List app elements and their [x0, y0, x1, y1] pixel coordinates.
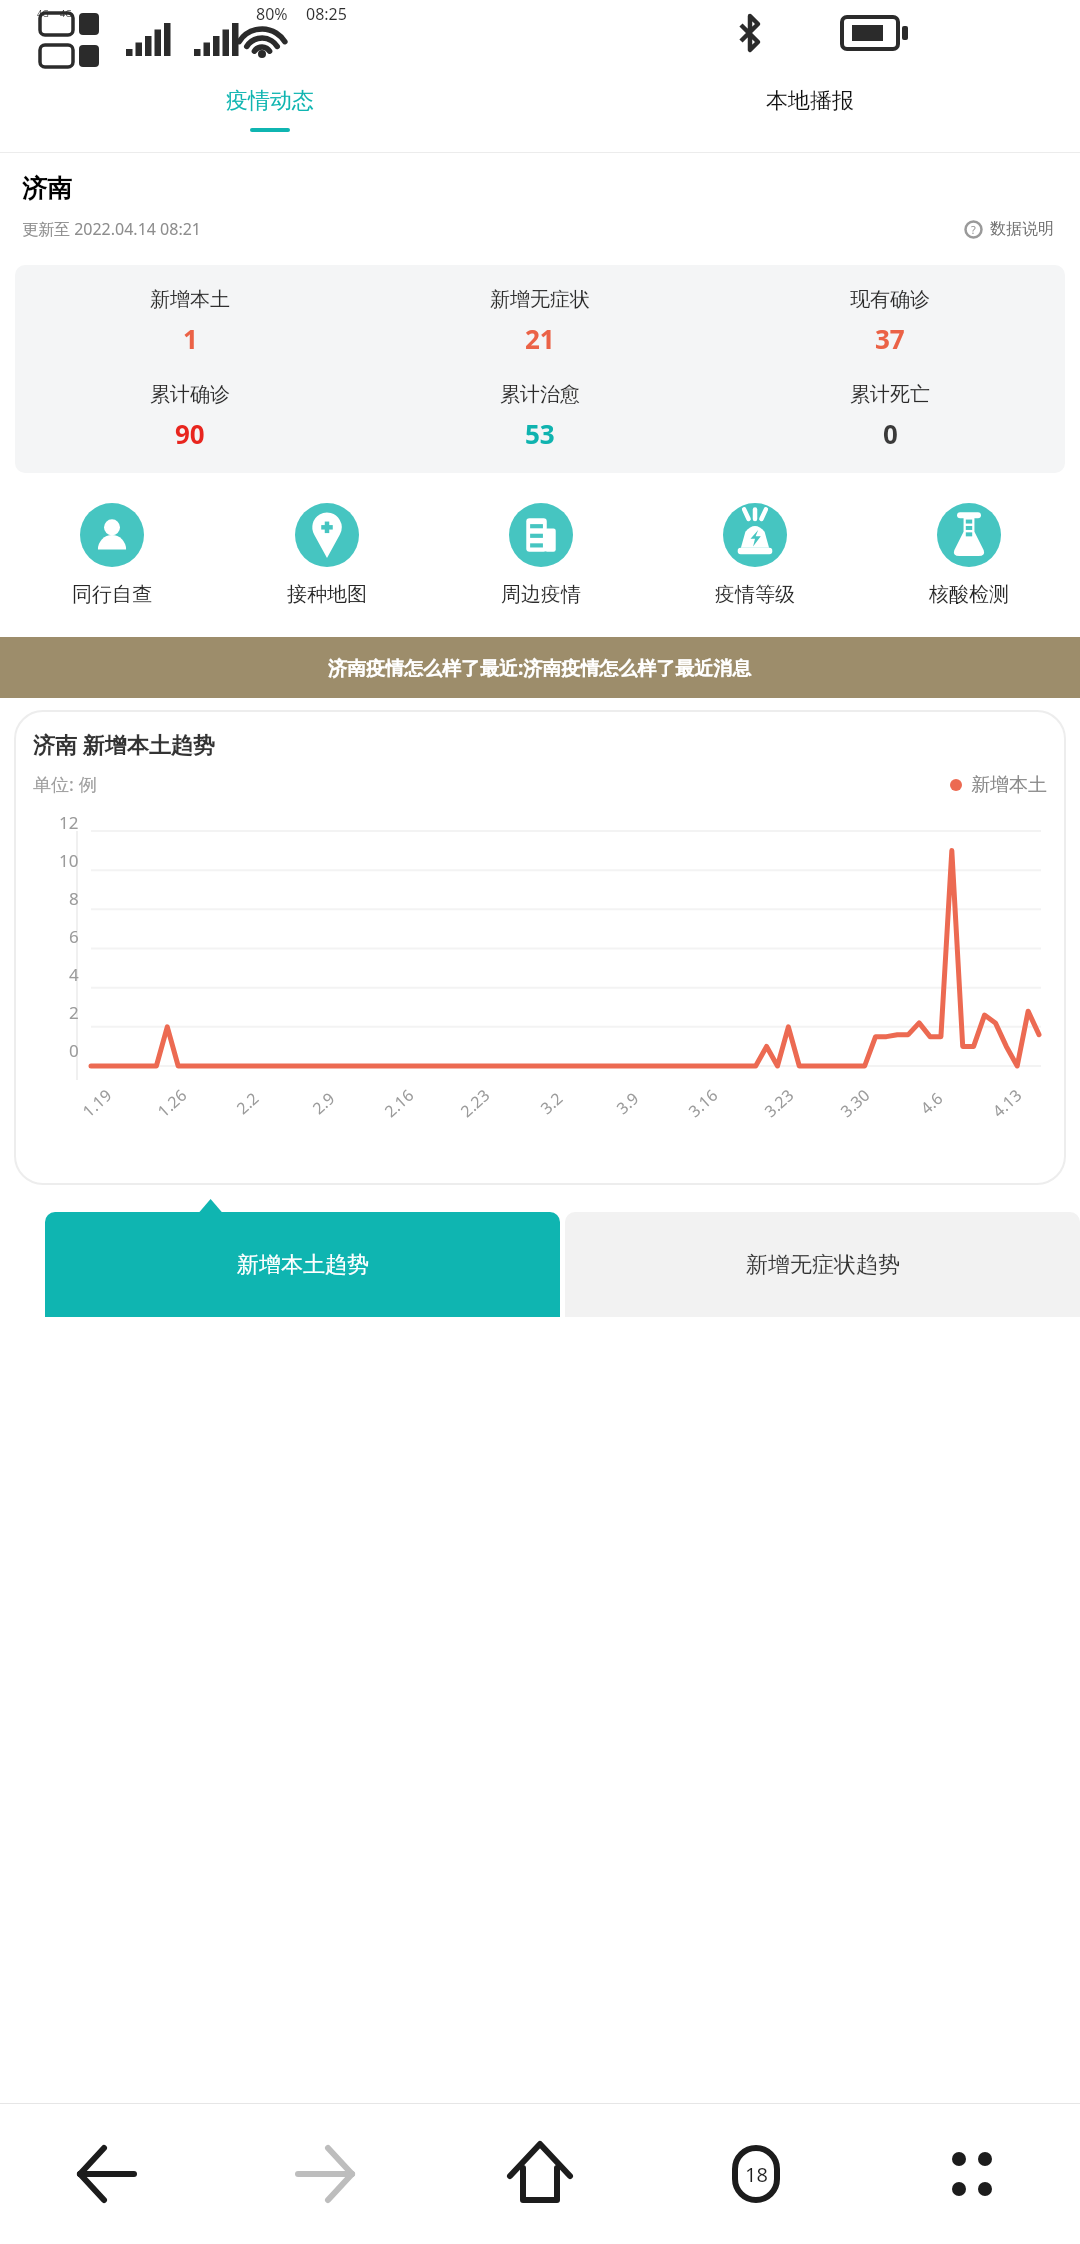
staticText: 4.6 [916, 1087, 947, 1119]
staticText: 济南 新增本土趋势 [33, 729, 215, 759]
button[interactable]: 疫情等级 [648, 503, 862, 607]
button[interactable]: 同行自查 [4, 503, 219, 607]
button[interactable]: 疫情动态 [0, 66, 540, 152]
staticText: 0 [69, 1039, 79, 1062]
staticText: 8 [69, 887, 79, 910]
button[interactable]: ? [960, 215, 1058, 243]
staticText: 2.9 [308, 1087, 339, 1119]
staticText: 4 [69, 963, 79, 986]
button[interactable]: Back [0, 2104, 216, 2244]
staticText: 2.23 [456, 1084, 494, 1122]
staticText: 3.23 [760, 1084, 798, 1122]
staticText: ? [971, 222, 976, 237]
staticText: 更新至 2022.04.14 08:21 [22, 218, 202, 240]
staticText: 4G [60, 7, 72, 19]
staticText: 3.2 [536, 1087, 567, 1119]
staticText: 核酸检测 [929, 582, 1009, 607]
staticText: 2.2 [232, 1087, 263, 1119]
staticText: 济南疫情怎么样了最近:济南疫情怎么样了最近消息 [328, 655, 752, 681]
button[interactable]: 周边疫情 [434, 503, 648, 607]
staticText: 新增无症状 [490, 287, 590, 312]
staticText: 53 [525, 416, 555, 451]
staticText: 新增本土趋势 [237, 1251, 369, 1279]
staticText: 疫情等级 [715, 582, 795, 607]
staticText: 4G [37, 7, 49, 19]
staticText: 接种地图 [287, 582, 367, 607]
staticText: 3.9 [612, 1087, 643, 1119]
staticText: 0 [883, 416, 898, 451]
staticText: 2 [69, 1001, 79, 1024]
staticText: 数据说明 [990, 219, 1054, 239]
staticText: 单位: 例 [33, 772, 97, 797]
staticText: 累计确诊 [150, 382, 230, 407]
staticText: 累计死亡 [850, 382, 930, 407]
staticText: 3.16 [684, 1084, 722, 1122]
button[interactable]: Menu [864, 2104, 1080, 2244]
staticText: 新增本土 [971, 773, 1047, 797]
button[interactable]: Tabs [648, 2104, 864, 2244]
staticText: 疫情动态 [226, 87, 314, 115]
staticText: 10 [59, 849, 79, 872]
button[interactable]: 核酸检测 [862, 503, 1076, 607]
staticText: 12 [59, 811, 79, 834]
button[interactable]: 新增本土趋势 [45, 1212, 560, 1317]
button[interactable]: 接种地图 [219, 503, 434, 607]
staticText: 现有确诊 [850, 287, 930, 312]
staticText: 周边疫情 [501, 582, 581, 607]
staticText: 90 [175, 416, 205, 451]
button[interactable]: 本地播报 [540, 66, 1080, 152]
staticText: 80% [256, 3, 288, 25]
staticText: 4.13 [988, 1084, 1026, 1122]
staticText: 1 [183, 321, 198, 356]
button[interactable]: Forward [216, 2104, 432, 2244]
button[interactable]: Home [432, 2104, 648, 2244]
button[interactable]: 新增无症状趋势 [565, 1212, 1080, 1317]
staticText: 6 [69, 925, 79, 948]
staticText: 新增无症状趋势 [746, 1251, 900, 1279]
staticText: 1.19 [78, 1084, 116, 1122]
staticText: 08:25 [306, 3, 347, 25]
staticText: 2.16 [380, 1084, 418, 1122]
staticText: 1.26 [153, 1084, 191, 1122]
staticText: 济南 [22, 173, 72, 204]
staticText: 同行自查 [72, 582, 152, 607]
staticText: 21 [525, 321, 555, 356]
staticText: 18 [745, 2161, 768, 2188]
staticText: 累计治愈 [500, 382, 580, 407]
staticText: 3.30 [836, 1084, 874, 1122]
staticText: 本地播报 [766, 87, 854, 115]
staticText: 37 [875, 321, 905, 356]
staticText: 新增本土 [150, 287, 230, 312]
